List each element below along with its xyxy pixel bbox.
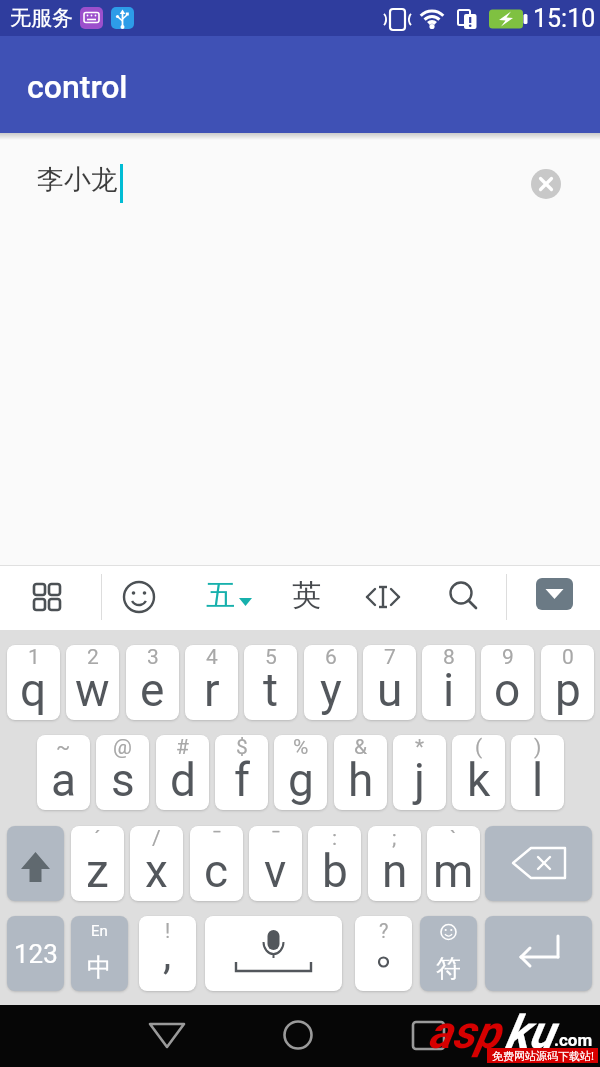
button[interactable] [485,916,592,991]
button[interactable]: 123 [7,916,64,991]
button[interactable]: * [393,735,446,810]
button[interactable]: ) [511,735,564,810]
button[interactable] [400,1009,454,1063]
button[interactable]: 6 [304,645,357,720]
button[interactable]: ~ [37,735,90,810]
staticText: 五 [206,577,235,614]
button[interactable]: @ [96,735,149,810]
staticText: / [152,826,161,851]
staticText: 0 [562,645,574,670]
button[interactable] [271,1009,325,1063]
staticText: y [320,663,342,717]
button[interactable]: 1 [7,645,60,720]
button[interactable] [485,826,592,901]
button[interactable]: ` [427,826,480,901]
staticText: i [443,663,455,717]
button[interactable]: / [130,826,183,901]
staticText: ) [534,735,542,760]
staticText: * [415,735,425,760]
staticText: t [263,663,279,717]
staticText: ( [475,735,483,760]
button[interactable]: 5 [244,645,297,720]
staticText: % [293,735,309,760]
staticText: j [414,753,426,807]
staticText: u [377,663,403,717]
staticText: h [348,753,374,807]
staticText: 1 [28,645,40,670]
staticText: r [204,663,220,717]
button[interactable]: # [156,735,209,810]
staticText: b [322,844,348,898]
button[interactable]: 4 [185,645,238,720]
staticText: 2 [87,645,99,670]
staticText: @ [113,735,132,760]
staticText: a [51,753,77,807]
button[interactable]: 2 [66,645,119,720]
staticText: s [111,753,135,807]
staticText: 7 [384,645,396,670]
button[interactable]: En [71,916,128,991]
button[interactable]: : [308,826,361,901]
staticText: control [27,68,128,106]
button[interactable] [536,578,573,610]
staticText: asp [428,1005,500,1059]
button[interactable]: & [334,735,387,810]
staticText: En [91,922,108,940]
button[interactable] [114,572,164,622]
button[interactable]: ¯ [190,826,243,901]
staticText: x [145,844,168,898]
staticText: 123 [14,939,58,969]
staticText: p [555,663,581,717]
staticText: ` [450,826,457,851]
button[interactable]: ( [452,735,505,810]
button[interactable]: % [274,735,327,810]
button[interactable]: 9 [481,645,534,720]
staticText: 李小龙 [37,163,118,197]
staticText: 中 [87,952,112,983]
button[interactable] [22,572,72,622]
staticText: k [467,753,491,807]
staticText: e [140,663,165,717]
staticText: 英 [292,577,321,614]
button[interactable]: 0 [541,645,594,720]
button[interactable] [140,1009,194,1063]
staticText: 9 [502,645,514,670]
button[interactable] [7,826,64,901]
staticText: : [332,826,338,851]
button[interactable]: ? [355,916,412,991]
staticText: , [163,930,172,979]
staticText: 6 [325,645,337,670]
staticText: d [170,753,196,807]
staticText: o [494,663,521,717]
staticText: ku [505,1005,554,1059]
button[interactable]: $ [215,735,268,810]
button[interactable]: ; [368,826,421,901]
button[interactable] [438,572,488,622]
staticText: 3 [147,645,159,670]
button[interactable] [358,572,408,622]
button[interactable]: ´ [71,826,124,901]
staticText: 15:10 [533,4,596,33]
button[interactable]: 7 [363,645,416,720]
staticText: 无服务 [10,5,73,31]
staticText: 8 [443,645,455,670]
staticText: g [288,753,314,807]
button[interactable]: 8 [422,645,475,720]
button[interactable]: ! [139,916,196,991]
button[interactable]: 符 [420,916,477,991]
button[interactable]: 五 [196,572,260,622]
staticText: n [382,844,408,898]
button[interactable] [531,169,561,199]
staticText: z [86,844,109,898]
staticText: ¯ [271,826,281,851]
staticText: ! [165,919,171,942]
button[interactable]: 3 [126,645,179,720]
button[interactable]: ¯ [249,826,302,901]
staticText: ´ [94,826,101,851]
button[interactable]: 英 [285,572,329,622]
staticText: $ [236,735,248,760]
staticText: ¯ [212,826,222,851]
button[interactable] [205,916,342,991]
staticText: w [75,663,110,717]
staticText: f [234,753,250,807]
